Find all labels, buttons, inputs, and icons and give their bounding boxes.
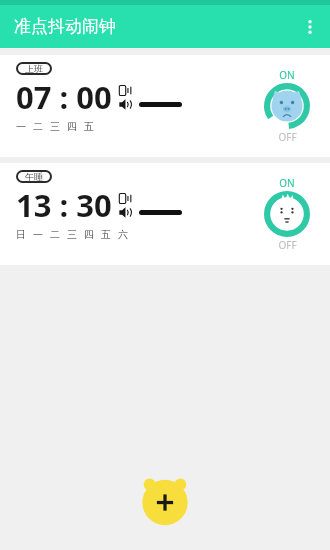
staticText: 二 — [33, 120, 43, 133]
staticText: 一 — [33, 228, 43, 241]
staticText: ON — [279, 68, 295, 82]
staticText: 一 — [16, 120, 26, 133]
button[interactable]: Alarm on — [256, 163, 318, 265]
button[interactable]: More options — [290, 5, 330, 48]
staticText: 三 — [67, 228, 77, 241]
staticText: 07 : 00 — [16, 76, 112, 118]
staticText: 三 — [50, 120, 60, 133]
staticText: 准点抖动闹钟 — [14, 16, 116, 37]
staticText: 13 : 30 — [16, 184, 112, 226]
staticText: 日 — [16, 228, 26, 241]
staticText: OFF — [278, 130, 297, 144]
staticText: 四 — [84, 228, 94, 241]
staticText: 五 — [101, 228, 111, 241]
staticText: ON — [279, 176, 295, 190]
button[interactable]: 午睡 — [0, 163, 330, 265]
staticText: 四 — [67, 120, 77, 133]
staticText: OFF — [278, 238, 297, 252]
staticText: 二 — [50, 228, 60, 241]
staticText: 五 — [84, 120, 94, 133]
button[interactable]: Add alarm — [137, 472, 193, 528]
button[interactable]: Alarm off — [256, 55, 318, 157]
button[interactable]: 上班 — [0, 55, 330, 157]
staticText: 上班 — [25, 63, 43, 74]
staticText: 午睡 — [25, 171, 43, 182]
staticText: 六 — [118, 228, 128, 241]
